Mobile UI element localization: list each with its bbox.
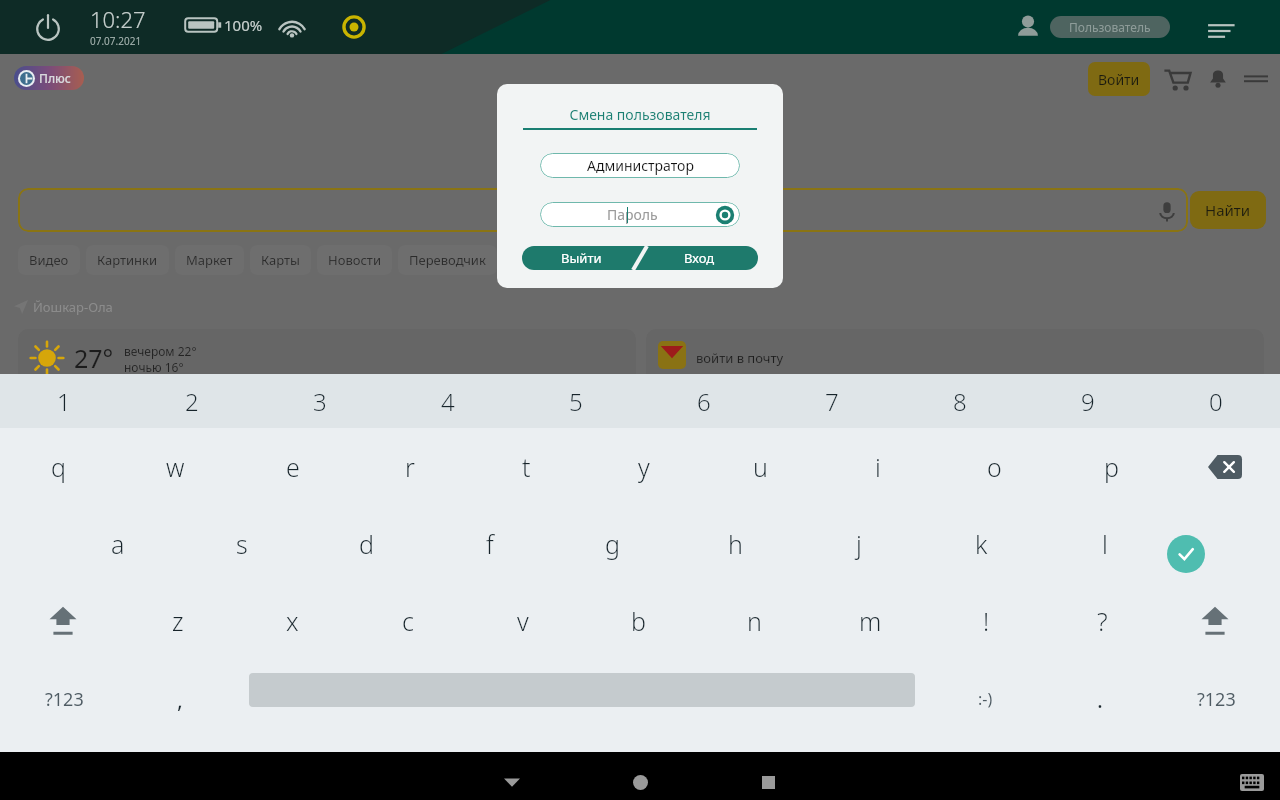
staticText: Карты xyxy=(261,251,300,269)
button[interactable]: Йошкар-Ола xyxy=(14,298,113,316)
staticText: 1 xyxy=(57,385,71,418)
button[interactable]: Войти xyxy=(1088,62,1150,96)
staticText: 9 xyxy=(1081,385,1095,418)
button[interactable]: Картинки xyxy=(86,245,169,275)
button[interactable]: x xyxy=(235,582,350,659)
button[interactable]: z xyxy=(120,582,235,659)
button[interactable]: a xyxy=(56,505,180,582)
staticText: l xyxy=(1102,527,1108,561)
staticText: 7 xyxy=(825,385,839,418)
button[interactable]: c xyxy=(350,582,465,659)
staticText: Картинки xyxy=(97,251,158,269)
button[interactable]: Пароль xyxy=(540,202,740,227)
button[interactable] xyxy=(18,188,1188,232)
button[interactable]: Видео xyxy=(18,245,80,275)
button[interactable]: ? xyxy=(1044,582,1160,659)
button[interactable]: 27° xyxy=(18,329,636,389)
button[interactable]: n xyxy=(696,582,812,659)
button[interactable]: i xyxy=(819,428,936,505)
button[interactable]: p xyxy=(1053,428,1170,505)
button[interactable]: f xyxy=(428,505,551,582)
button[interactable]: h xyxy=(674,505,797,582)
button[interactable]: l xyxy=(1043,505,1166,582)
button[interactable]: o xyxy=(936,428,1053,505)
button[interactable]: ?123 xyxy=(26,659,102,739)
staticText: Вход xyxy=(684,249,715,267)
button[interactable]: ! xyxy=(928,582,1044,659)
staticText: ?123 xyxy=(45,687,84,712)
button[interactable]: m xyxy=(812,582,928,659)
button[interactable]: Выйти xyxy=(522,246,640,270)
button[interactable]: Account xyxy=(1012,11,1044,43)
button[interactable]: y xyxy=(585,428,702,505)
button[interactable]: Администратор xyxy=(540,153,740,178)
button[interactable]: Переводчик xyxy=(398,245,497,275)
button[interactable]: Маркет xyxy=(175,245,244,275)
button[interactable]: 8 xyxy=(896,374,1024,428)
button[interactable]: 2 xyxy=(128,374,256,428)
button[interactable]: Cart xyxy=(1162,64,1192,94)
button[interactable]: Найти xyxy=(1190,191,1266,229)
button[interactable]: Пользователь xyxy=(1050,16,1170,38)
button[interactable]: Backspace xyxy=(1170,428,1280,505)
button[interactable]: 5 xyxy=(512,374,640,428)
button[interactable]: 0 xyxy=(1152,374,1280,428)
button[interactable]: Enter xyxy=(1167,535,1205,573)
button[interactable]: e xyxy=(234,428,351,505)
button[interactable]: w xyxy=(117,428,234,505)
button[interactable]: 7 xyxy=(768,374,896,428)
button[interactable]: Back xyxy=(496,766,528,798)
button[interactable]: 3 xyxy=(256,374,384,428)
staticText: 0 xyxy=(1209,385,1223,418)
button[interactable]: k xyxy=(920,505,1043,582)
button[interactable]: d xyxy=(304,505,428,582)
button[interactable]: q xyxy=(0,428,117,505)
staticText: a xyxy=(111,527,125,561)
staticText: Новости xyxy=(328,251,381,269)
button[interactable]: Voice search xyxy=(1154,198,1180,224)
button[interactable]: . xyxy=(1066,659,1134,739)
button[interactable]: ?123 xyxy=(1178,659,1254,739)
button[interactable]: Browser menu xyxy=(1244,68,1268,92)
button[interactable]: Notifications xyxy=(1204,64,1232,92)
button[interactable]: , xyxy=(145,659,215,739)
button[interactable]: Shift xyxy=(30,582,96,659)
button[interactable]: Карты xyxy=(250,245,311,275)
button[interactable]: Show password xyxy=(715,205,735,225)
button[interactable]: v xyxy=(465,582,580,659)
button[interactable]: войти в почту xyxy=(646,329,1264,389)
staticText: m xyxy=(859,604,882,638)
button[interactable]: j xyxy=(797,505,920,582)
staticText: p xyxy=(1104,450,1119,484)
button[interactable]: Новости xyxy=(317,245,392,275)
button[interactable]: 1 xyxy=(0,374,128,428)
button[interactable]: Вход xyxy=(640,246,758,270)
staticText: Пользователь xyxy=(1069,19,1151,35)
staticText: e xyxy=(286,450,300,484)
staticText: , xyxy=(177,684,183,714)
button[interactable]: u xyxy=(702,428,819,505)
staticText: вечером 22° xyxy=(124,343,197,359)
button[interactable]: 6 xyxy=(640,374,768,428)
button[interactable]: Программа xyxy=(503,245,599,275)
button[interactable]: Keyboard xyxy=(1238,768,1266,796)
button[interactable]: :-) xyxy=(950,659,1020,739)
button[interactable]: Home xyxy=(624,766,656,798)
button[interactable]: g xyxy=(551,505,674,582)
staticText: j xyxy=(856,527,862,561)
button[interactable]: Shift xyxy=(1182,582,1248,659)
button[interactable]: 4 xyxy=(384,374,512,428)
button[interactable]: r xyxy=(351,428,468,505)
staticText: Плюс xyxy=(39,70,71,86)
button[interactable]: Menu xyxy=(1204,14,1238,48)
button[interactable]: 9 xyxy=(1024,374,1152,428)
button[interactable]: t xyxy=(468,428,585,505)
button[interactable]: b xyxy=(580,582,696,659)
button[interactable]: s xyxy=(180,505,304,582)
button[interactable]: Power xyxy=(30,10,66,46)
button[interactable]: Плюс xyxy=(14,66,84,90)
button[interactable]: Sync xyxy=(340,13,368,41)
button[interactable]: Recent apps xyxy=(752,766,784,798)
staticText: Пароль xyxy=(607,205,658,224)
